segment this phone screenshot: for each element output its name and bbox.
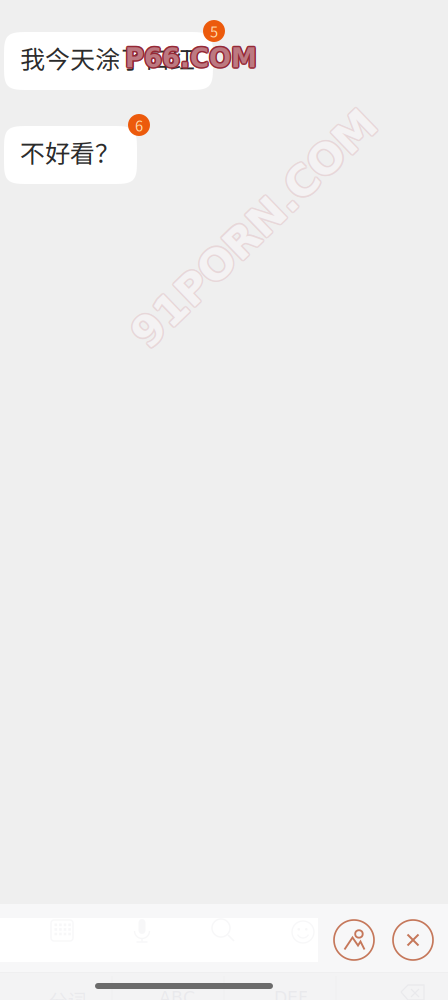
button[interactable]: Voice input [125,914,159,948]
staticText: 91PORN.COM [92,204,413,254]
staticText: 91PORN.COM [93,206,414,255]
staticText: 91PORN.COM [92,205,413,255]
staticText: P66.COM [124,42,256,72]
staticText: DEF [274,988,308,1000]
staticText: P66.COM [125,44,257,75]
button[interactable]: 不好看？ [4,126,137,184]
staticText: P66.COM [126,42,258,72]
staticText: ABC [159,988,195,1000]
staticText: P66.COM [126,44,258,74]
button[interactable]: 我今天涂了口红 [4,32,213,90]
staticText: 91PORN.COM [92,203,413,253]
staticText: 我今天涂了口红 [20,40,195,76]
button[interactable]: Emoji [286,915,320,949]
staticText: P66.COM [124,44,256,74]
button[interactable]: Search [206,914,240,948]
staticText: 5 [210,20,218,42]
button[interactable]: Keyboard [45,914,79,948]
staticText: 6 [135,114,143,136]
staticText: P66.COM [126,43,258,73]
staticText: 91PORN.COM [93,204,414,254]
staticText: P66.COM [125,41,257,72]
staticText: P66.COM [125,43,257,73]
staticText: 91PORN.COM [95,204,416,254]
staticText: 不好看？ [20,134,120,170]
staticText: 91PORN.COM [95,203,416,253]
staticText: 91PORN.COM [95,205,416,255]
staticText: P66.COM [123,43,255,73]
staticText: 91PORN.COM [93,203,414,252]
button[interactable]: Photos [334,920,374,960]
button[interactable]: Close [393,920,433,960]
